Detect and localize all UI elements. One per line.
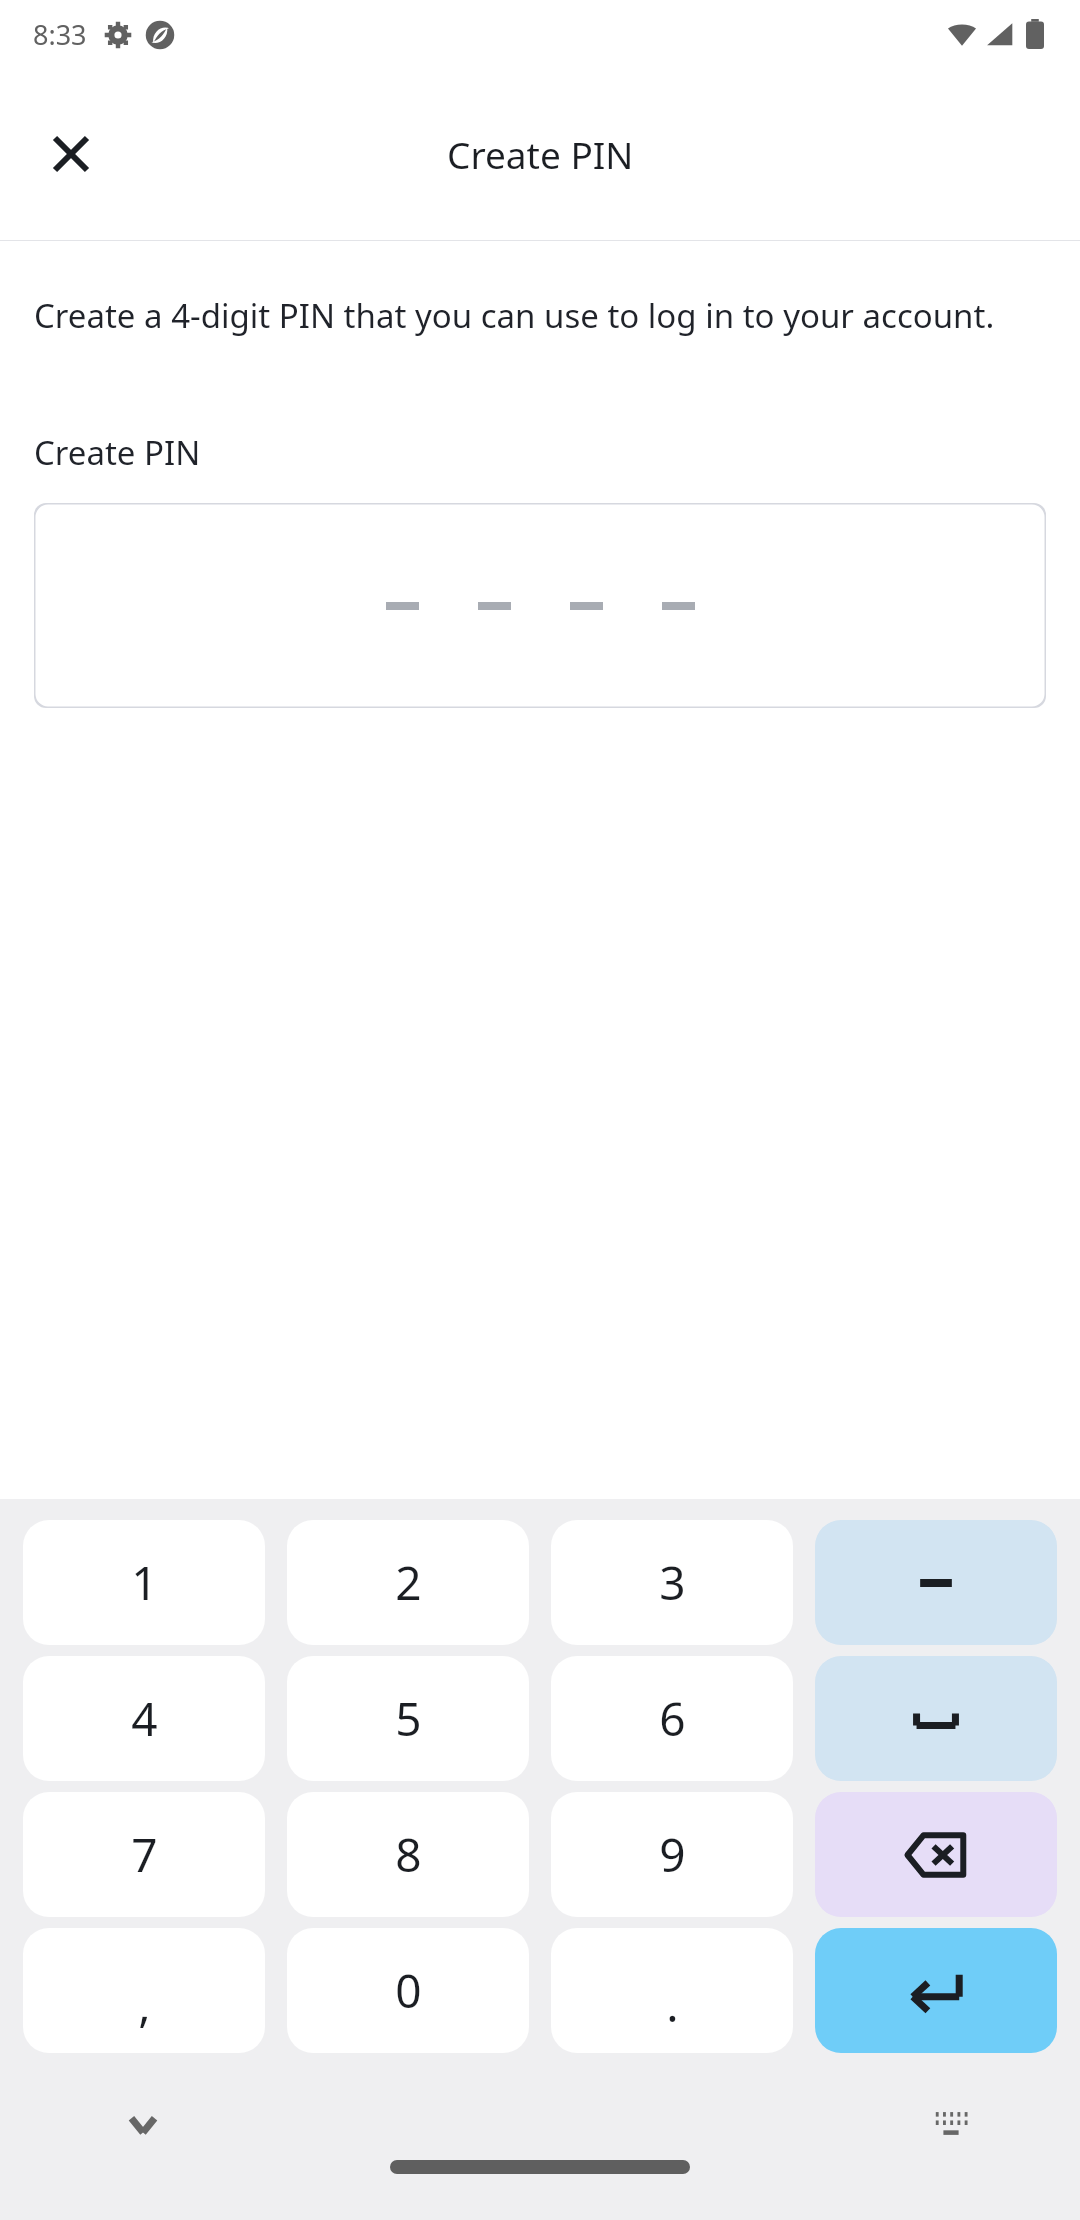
button[interactable]: Hide keyboard — [100, 2082, 186, 2168]
staticText: . — [666, 1973, 679, 2036]
staticText: 9 — [659, 1823, 686, 1886]
button[interactable]: 1 — [23, 1520, 265, 1645]
staticText: Create PIN — [447, 129, 634, 179]
button[interactable]: Close — [28, 111, 114, 197]
button[interactable]: , — [23, 1928, 265, 2053]
button[interactable]: Enter — [815, 1928, 1057, 2053]
staticText: 7 — [131, 1823, 158, 1886]
staticText: 5 — [395, 1687, 422, 1750]
staticText: 4 — [131, 1687, 158, 1750]
button[interactable]: Space — [815, 1656, 1057, 1781]
button[interactable]: 6 — [551, 1656, 793, 1781]
staticText: 0 — [395, 1959, 422, 2022]
button[interactable]: Switch keyboard — [908, 2082, 994, 2168]
button[interactable]: 5 — [287, 1656, 529, 1781]
button[interactable]: Backspace — [815, 1792, 1057, 1917]
staticText: , — [138, 1973, 151, 2036]
button[interactable]: 0 — [287, 1928, 529, 2053]
button[interactable]: 3 — [551, 1520, 793, 1645]
button[interactable]: Hyphen — [815, 1520, 1057, 1645]
staticText: 6 — [659, 1687, 686, 1750]
button[interactable] — [34, 503, 1046, 708]
button[interactable]: . — [551, 1928, 793, 2053]
staticText: 8:33 — [33, 16, 87, 53]
staticText: Create PIN — [34, 430, 201, 475]
button[interactable]: 9 — [551, 1792, 793, 1917]
button[interactable]: 2 — [287, 1520, 529, 1645]
staticText: 1 — [131, 1551, 158, 1614]
staticText: 3 — [659, 1551, 686, 1614]
staticText: Create a 4-digit PIN that you can use to… — [34, 293, 1020, 338]
staticText: 8 — [395, 1823, 422, 1886]
button[interactable]: 4 — [23, 1656, 265, 1781]
button[interactable]: 8 — [287, 1792, 529, 1917]
button[interactable]: 7 — [23, 1792, 265, 1917]
staticText: 2 — [395, 1551, 422, 1614]
